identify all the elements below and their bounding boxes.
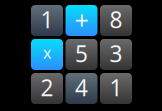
button[interactable]: 8 (100, 5, 132, 36)
staticText: 8 (109, 4, 122, 34)
button[interactable]: 4 (65, 73, 97, 104)
button[interactable]: 5 (65, 39, 97, 70)
staticText: + (74, 3, 88, 37)
staticText: 1 (109, 72, 122, 102)
staticText: 1 (40, 4, 53, 34)
staticText: 5 (75, 38, 88, 68)
staticText: 2 (40, 72, 53, 102)
button[interactable]: 3 (100, 39, 132, 70)
button[interactable]: 1 (100, 73, 132, 104)
staticText: 3 (109, 38, 122, 68)
button[interactable]: + (65, 5, 97, 36)
staticText: x (43, 42, 51, 63)
button[interactable]: x (31, 39, 63, 70)
button[interactable]: 1 (31, 5, 63, 36)
button[interactable]: 2 (31, 73, 63, 104)
staticText: 4 (75, 72, 88, 102)
